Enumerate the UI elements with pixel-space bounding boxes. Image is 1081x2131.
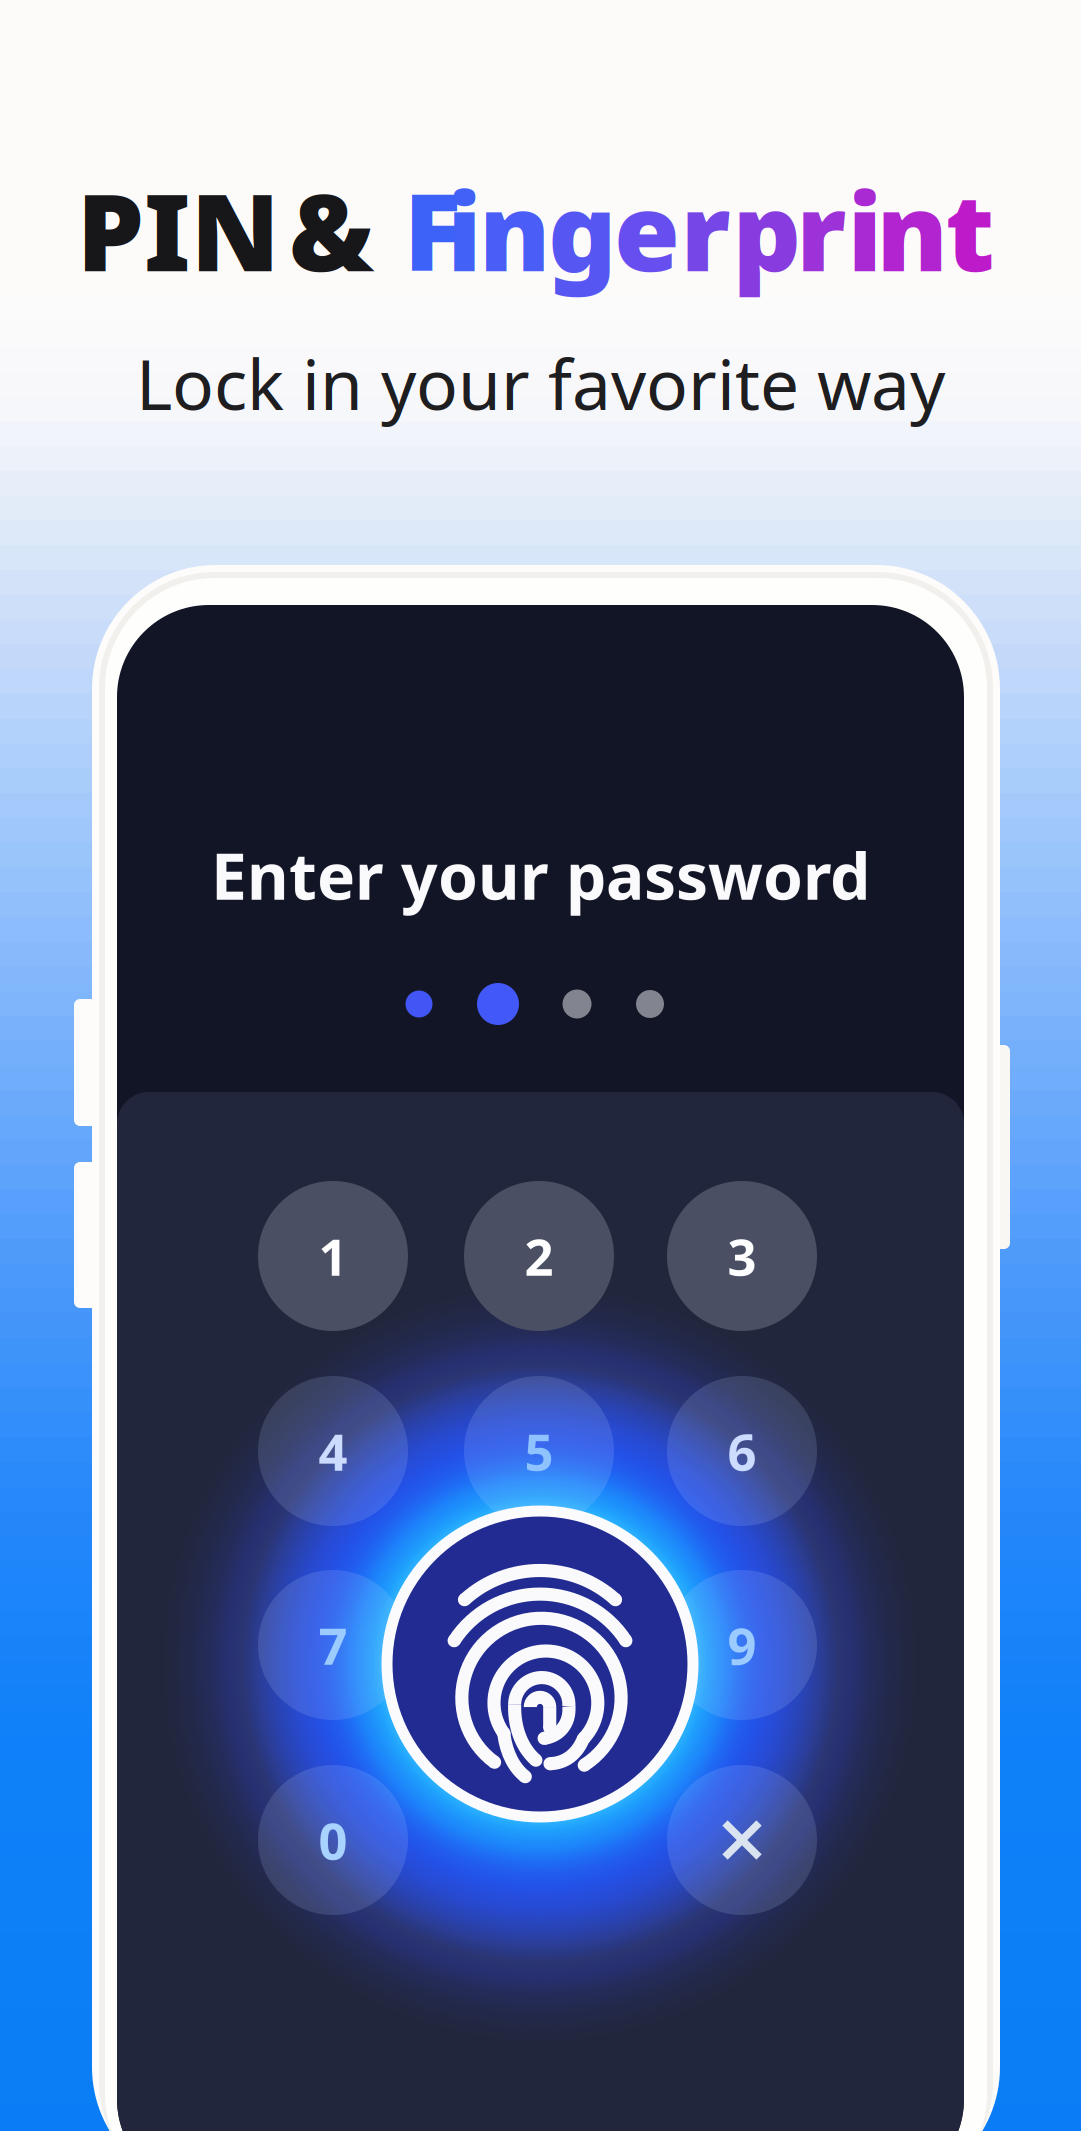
staticText: 0 xyxy=(318,1806,347,1874)
button[interactable]: 5 xyxy=(464,1376,614,1526)
staticText: & xyxy=(289,159,374,301)
button[interactable]: 2 xyxy=(464,1181,614,1331)
staticText: g xyxy=(548,159,617,301)
staticText: PIN xyxy=(77,159,280,301)
staticText: p xyxy=(733,159,802,301)
staticText: 3 xyxy=(727,1222,756,1290)
staticText: F xyxy=(404,159,461,301)
staticText: r xyxy=(796,159,846,301)
staticText: 7 xyxy=(318,1611,347,1679)
button[interactable]: 7 xyxy=(258,1570,408,1720)
staticText: r xyxy=(680,159,730,301)
staticText: n xyxy=(877,159,948,301)
staticText: 4 xyxy=(318,1417,347,1485)
button[interactable]: 6 xyxy=(667,1376,817,1526)
staticText: 9 xyxy=(727,1611,756,1679)
staticText: t xyxy=(945,159,994,301)
staticText: Lock in your favorite way xyxy=(136,337,945,429)
staticText: n xyxy=(479,159,550,301)
staticText: i xyxy=(447,159,482,301)
button[interactable]: 4 xyxy=(258,1376,408,1526)
staticText: 1 xyxy=(318,1222,347,1290)
staticText: 6 xyxy=(727,1417,756,1485)
staticText: Enter your password xyxy=(211,832,870,917)
button[interactable]: 0 xyxy=(258,1765,408,1915)
button[interactable]: Delete xyxy=(667,1765,817,1915)
staticText: 2 xyxy=(524,1222,553,1290)
button[interactable]: 9 xyxy=(667,1570,817,1720)
staticText: 5 xyxy=(524,1417,553,1485)
staticText: e xyxy=(614,159,680,301)
button[interactable]: 3 xyxy=(667,1181,817,1331)
button[interactable]: Unlock with fingerprint xyxy=(381,1505,698,1822)
staticText: i xyxy=(847,159,882,301)
button[interactable]: 1 xyxy=(258,1181,408,1331)
